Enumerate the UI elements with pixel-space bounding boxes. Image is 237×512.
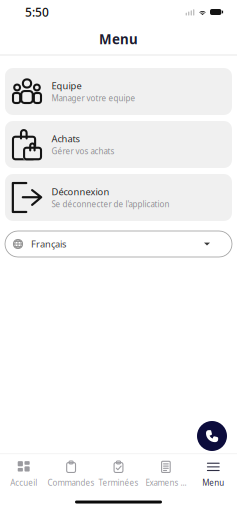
- staticText: Commandes: [48, 477, 95, 488]
- button[interactable]: Call: [197, 421, 227, 451]
- button[interactable]: Menu: [190, 454, 237, 492]
- button[interactable]: Français: [5, 231, 232, 257]
- button[interactable]: Equipe: [5, 68, 232, 115]
- staticText: 5:50: [25, 4, 49, 20]
- button[interactable]: Déconnexion: [5, 174, 232, 221]
- button[interactable]: Accueil: [0, 454, 47, 492]
- staticText: Menu: [202, 477, 224, 488]
- staticText: Terminées: [98, 477, 138, 488]
- staticText: Equipe: [51, 79, 81, 92]
- staticText: Manager votre equipe: [51, 93, 135, 103]
- button[interactable]: Achats: [5, 121, 232, 168]
- button[interactable]: Commandes: [47, 454, 95, 492]
- staticText: Menu: [99, 30, 138, 48]
- staticText: Gérer vos achats: [51, 146, 114, 156]
- button[interactable]: Examens ...: [142, 454, 190, 492]
- staticText: Français: [31, 238, 66, 250]
- staticText: Achats: [51, 132, 79, 145]
- staticText: Accueil: [10, 477, 37, 488]
- staticText: Déconnexion: [51, 185, 109, 198]
- button[interactable]: Terminées: [95, 454, 142, 492]
- staticText: Examens ...: [145, 477, 186, 488]
- staticText: Se déconnecter de l'application: [51, 199, 169, 209]
